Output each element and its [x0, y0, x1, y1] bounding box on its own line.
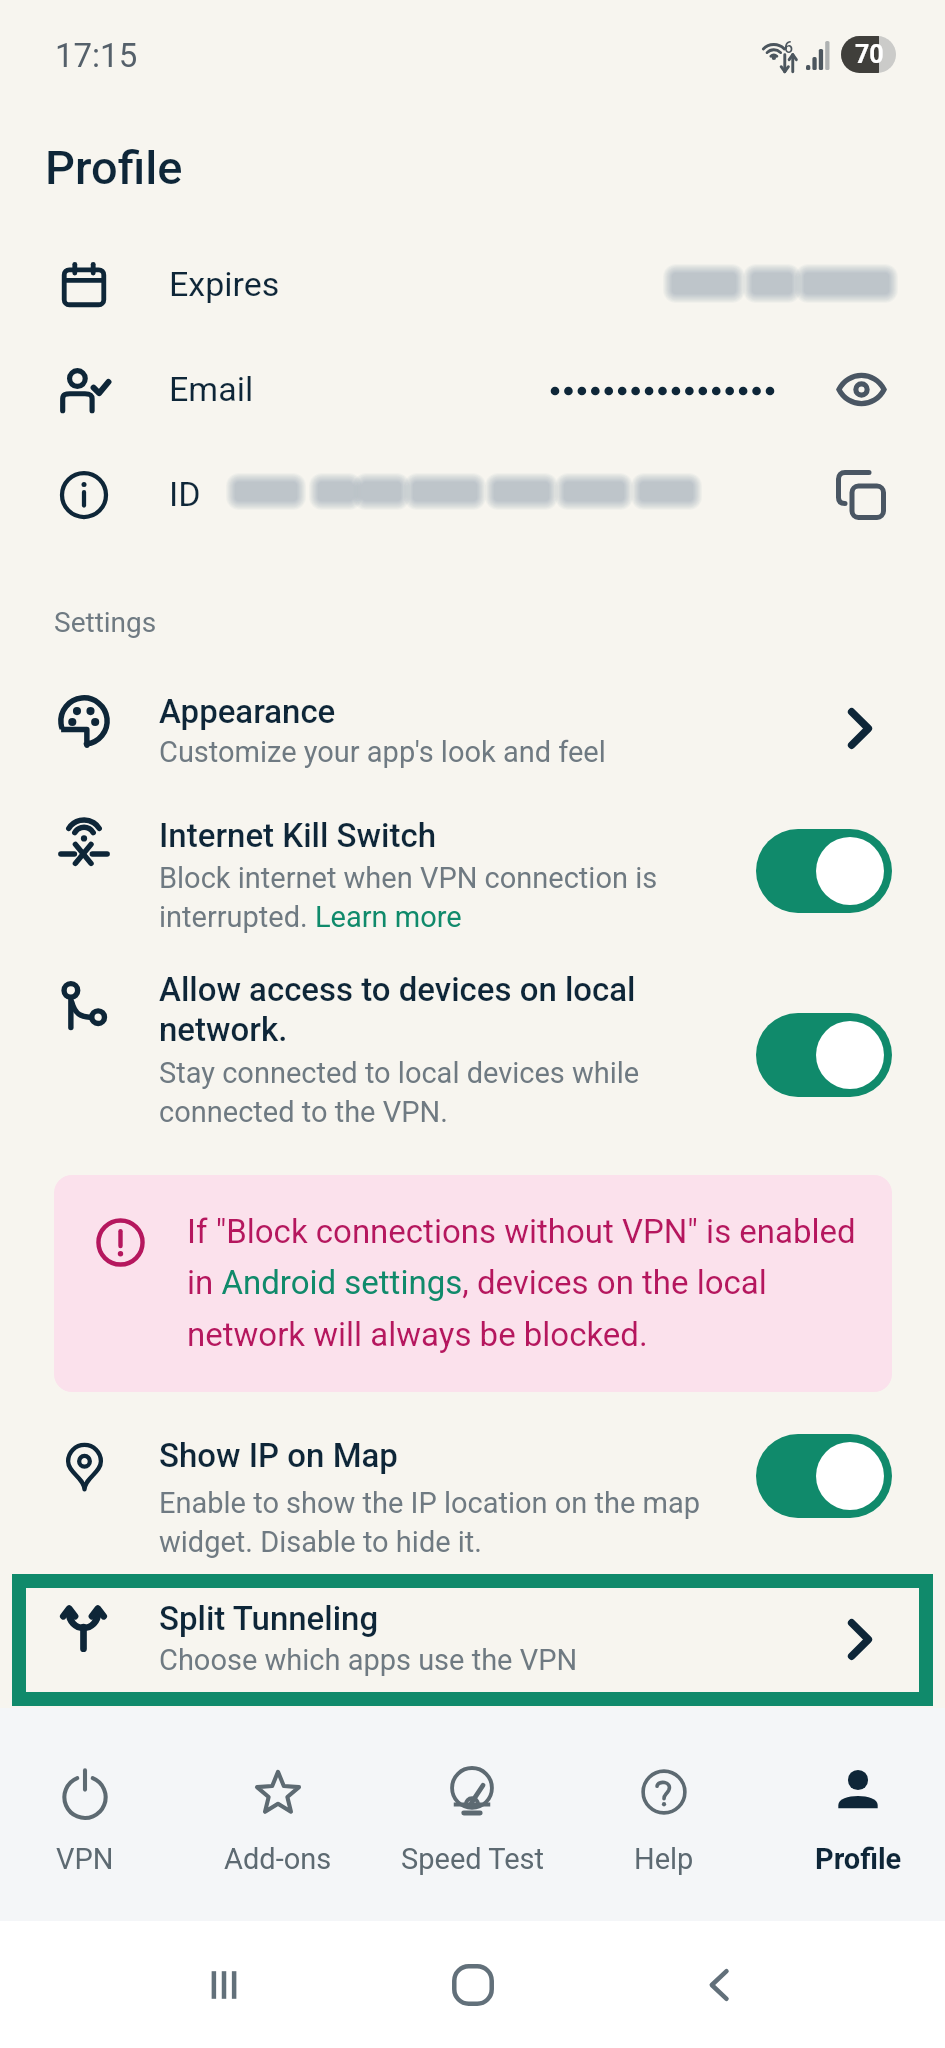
staticText: Stay connected to local devices while co… [159, 1056, 704, 1129]
button[interactable]: Appearance [159, 692, 704, 769]
staticText: Allow access to devices on local network… [159, 970, 704, 1049]
button[interactable]: Speed Test [376, 1708, 568, 1921]
button[interactable]: Toggle [756, 829, 892, 913]
staticText: Settings [54, 606, 157, 639]
staticText: 70 [855, 40, 884, 69]
staticText: Appearance [159, 692, 336, 731]
staticText: Split Tunneling [159, 1599, 379, 1638]
staticText: Profile [45, 140, 183, 195]
staticText: Help [634, 1842, 694, 1876]
staticText: 6 [784, 38, 794, 57]
staticText: ID [169, 474, 201, 514]
button[interactable]: ID [48, 459, 120, 531]
staticText: Choose which apps use the VPN [159, 1643, 578, 1677]
staticText: Email [169, 369, 254, 409]
button[interactable]: Copy ID [826, 460, 896, 530]
button[interactable]: Show IP on Map [159, 1436, 704, 1559]
button[interactable]: Expires [48, 249, 120, 321]
staticText: Show IP on Map [159, 1436, 398, 1475]
button[interactable] [26, 1588, 919, 1692]
staticText: VPN [56, 1842, 114, 1876]
button[interactable]: Show email [826, 354, 896, 424]
staticText: Block internet when VPN connection is in… [159, 861, 704, 934]
staticText: If "Block connections without VPN" is en… [187, 1212, 859, 1354]
staticText: Add-ons [224, 1842, 332, 1876]
staticText: Customize your app's look and feel [159, 735, 606, 769]
staticText: 17:15 [55, 36, 138, 75]
button[interactable]: VPN [0, 1708, 181, 1921]
staticText: Enable to show the IP location on the ma… [159, 1486, 704, 1559]
button[interactable]: Add-ons [182, 1708, 374, 1921]
button[interactable]: Email [48, 356, 120, 428]
button[interactable]: Open [825, 693, 895, 763]
staticText: Profile [815, 1842, 902, 1876]
staticText: Expires [169, 264, 280, 304]
button[interactable]: Allow access to devices on local network… [159, 970, 704, 1129]
button[interactable]: Profile [762, 1708, 945, 1921]
staticText: Internet Kill Switch [159, 816, 437, 855]
staticText: Speed Test [401, 1842, 544, 1876]
button[interactable]: Open [825, 1604, 895, 1674]
button[interactable]: Help [568, 1708, 760, 1921]
button[interactable]: Toggle [756, 1434, 892, 1518]
button[interactable]: Toggle [756, 1013, 892, 1097]
button[interactable]: Internet Kill Switch [159, 816, 704, 934]
